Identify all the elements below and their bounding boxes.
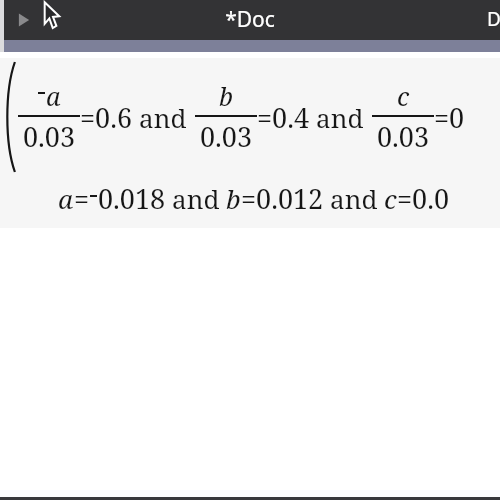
button[interactable]: DEG <box>487 6 500 32</box>
staticText: a <box>58 181 74 216</box>
staticText: b <box>219 79 234 113</box>
button[interactable]: Show page sorter <box>8 4 40 36</box>
staticText: c <box>384 181 397 216</box>
staticText: 0.03 <box>23 118 76 155</box>
staticText: = <box>74 180 90 217</box>
staticText: 0.018 <box>98 180 166 217</box>
staticText: 0.03 <box>200 118 253 155</box>
staticText: 0.03 <box>377 118 430 155</box>
staticText: and <box>330 181 378 216</box>
staticText: a <box>46 79 61 113</box>
staticText: c <box>397 79 410 113</box>
staticText: =0.4 <box>257 99 310 136</box>
staticText: =0.6 <box>80 99 133 136</box>
staticText: and <box>316 100 364 135</box>
staticText: =0.0 <box>397 180 450 217</box>
staticText: =0 <box>434 99 465 136</box>
staticText: and <box>172 181 220 216</box>
staticText: b <box>226 181 241 216</box>
staticText: *Doc <box>225 5 275 34</box>
staticText: =0.012 <box>241 180 324 217</box>
staticText: and <box>139 100 187 135</box>
